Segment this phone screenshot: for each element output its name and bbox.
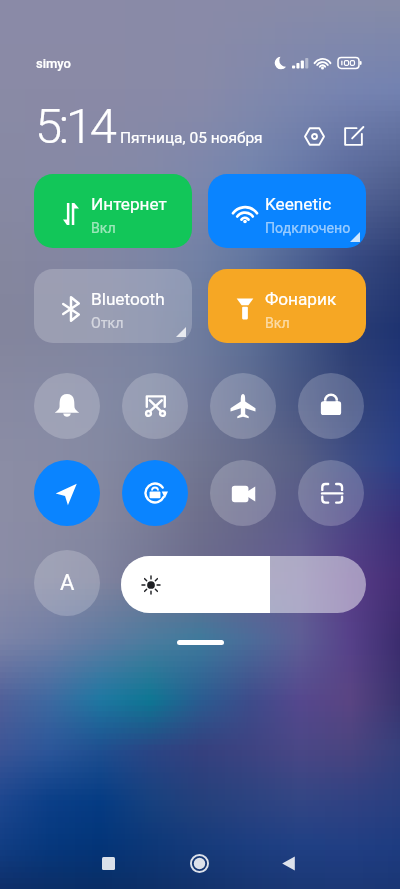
staticText: Фонарик bbox=[265, 289, 337, 309]
button[interactable]: Back bbox=[264, 839, 313, 888]
button[interactable]: Lock bbox=[298, 373, 364, 439]
staticText: Вкл bbox=[91, 220, 116, 237]
staticText: Bluetooth bbox=[91, 289, 165, 309]
button[interactable]: Keenetic bbox=[208, 174, 366, 248]
button[interactable]: Auto rotate bbox=[122, 460, 188, 526]
button[interactable]: Home bbox=[175, 839, 224, 888]
button[interactable]: Scan bbox=[298, 460, 364, 526]
staticText: Откл bbox=[91, 315, 124, 332]
button[interactable]: Edit bbox=[335, 118, 371, 154]
button[interactable]: Bluetooth bbox=[34, 269, 192, 343]
button[interactable]: Auto brightness bbox=[34, 550, 100, 616]
staticText: Вкл bbox=[265, 315, 290, 332]
button[interactable]: Интернет bbox=[34, 174, 192, 248]
staticText: Подключено bbox=[265, 220, 351, 237]
button[interactable]: Screenshot bbox=[122, 373, 188, 439]
staticText: 5:14 bbox=[35, 98, 114, 155]
button[interactable]: Recents bbox=[84, 839, 133, 888]
button[interactable]: Airplane mode bbox=[210, 373, 276, 439]
button[interactable]: Location bbox=[34, 460, 100, 526]
button[interactable]: Settings bbox=[296, 118, 332, 154]
button[interactable]: Silent bbox=[34, 373, 100, 439]
staticText: Интернет bbox=[91, 194, 167, 214]
button[interactable]: Фонарик bbox=[208, 269, 366, 343]
staticText: A bbox=[60, 570, 75, 596]
button[interactable]: Screen record bbox=[210, 460, 276, 526]
staticText: Keenetic bbox=[265, 194, 332, 214]
button[interactable] bbox=[121, 556, 366, 613]
staticText: simyo bbox=[36, 56, 71, 71]
staticText: Пятница, 05 ноября bbox=[120, 129, 263, 147]
